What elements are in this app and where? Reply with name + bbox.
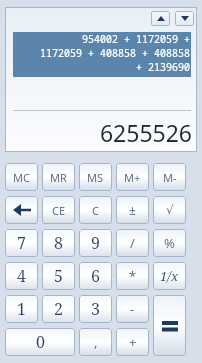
staticText: √ <box>166 203 174 217</box>
staticText: MC <box>13 170 30 185</box>
button[interactable]: √ <box>153 196 186 224</box>
staticText: 8 <box>54 232 63 254</box>
button[interactable]: MR <box>42 163 75 191</box>
button[interactable]: % <box>153 229 186 257</box>
staticText: MR <box>50 170 67 185</box>
button[interactable]: M- <box>153 163 186 191</box>
staticText: 7 <box>17 232 26 254</box>
button[interactable]: 1/x <box>153 262 186 290</box>
staticText: M- <box>163 170 177 185</box>
staticText: 2 <box>54 298 63 320</box>
button[interactable]: 5 <box>42 262 75 290</box>
button[interactable]: Backspace <box>5 196 38 224</box>
button[interactable]: Scroll down <box>175 11 194 26</box>
button[interactable]: 4 <box>5 262 38 290</box>
button[interactable]: MC <box>5 163 38 191</box>
staticText: 1 <box>17 298 26 320</box>
button[interactable]: Equals <box>153 295 186 356</box>
staticText: , <box>94 333 98 351</box>
button[interactable]: CE <box>42 196 75 224</box>
button[interactable]: 3 <box>79 295 112 323</box>
button[interactable]: C <box>79 196 112 224</box>
button[interactable]: 8 <box>42 229 75 257</box>
staticText: 9 <box>91 232 100 254</box>
button[interactable]: * <box>116 262 149 290</box>
button[interactable]: 7 <box>5 229 38 257</box>
button[interactable]: ± <box>116 196 149 224</box>
button[interactable]: 9 <box>79 229 112 257</box>
staticText: 954002 + 1172059 + 1172059 + 408858 + 40… <box>13 32 190 74</box>
staticText: % <box>164 234 175 252</box>
staticText: 0 <box>36 331 45 353</box>
button[interactable]: M+ <box>116 163 149 191</box>
button[interactable]: 6 <box>79 262 112 290</box>
staticText: / <box>130 234 135 252</box>
staticText: 4 <box>17 265 26 287</box>
staticText: 5 <box>54 265 63 287</box>
staticText: ± <box>129 202 136 218</box>
staticText: * <box>129 267 137 285</box>
staticText: M+ <box>124 170 141 185</box>
staticText: - <box>130 300 135 318</box>
button[interactable]: 0 <box>5 328 75 356</box>
button[interactable]: + <box>116 328 149 356</box>
button[interactable]: 1 <box>5 295 38 323</box>
button[interactable]: Scroll up <box>151 11 170 26</box>
button[interactable]: - <box>116 295 149 323</box>
staticText: CE <box>52 203 66 218</box>
button[interactable]: MS <box>79 163 112 191</box>
button[interactable]: / <box>116 229 149 257</box>
staticText: 3 <box>91 298 100 320</box>
staticText: C <box>92 203 99 218</box>
staticText: 6 <box>91 265 100 287</box>
staticText: MS <box>87 170 104 185</box>
staticText: 6255526 <box>5 117 192 148</box>
button[interactable]: 2 <box>42 295 75 323</box>
staticText: 1/x <box>160 267 179 285</box>
staticText: + <box>129 333 137 351</box>
button[interactable]: , <box>79 328 112 356</box>
